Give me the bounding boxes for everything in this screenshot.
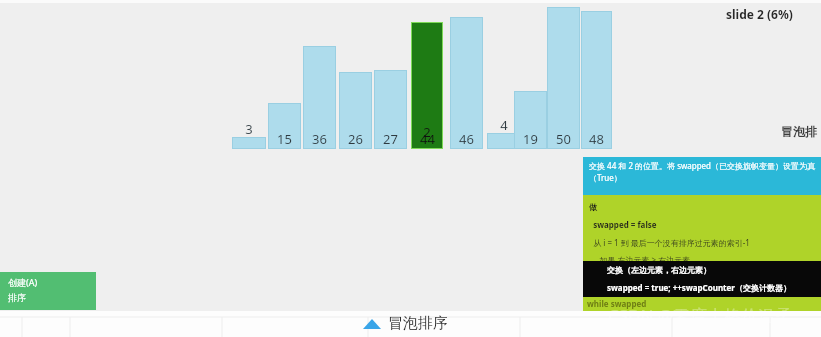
button[interactable]: slide 2 (6%): [722, 4, 797, 24]
button[interactable]: [304, 47, 335, 148]
button[interactable]: [340, 73, 371, 148]
staticText: 48: [589, 130, 604, 148]
button[interactable]: [451, 18, 482, 148]
staticText: 26: [348, 130, 363, 148]
staticText: swapped = false: [589, 219, 657, 230]
staticText: 从 i = 1 到 最后一个没有排序过元素的索引-1: [589, 237, 750, 248]
button[interactable]: [412, 23, 442, 148]
staticText: 冒泡排: [781, 124, 817, 139]
button[interactable]: [582, 12, 611, 148]
staticText: 50: [556, 130, 571, 148]
button[interactable]: 交换 44 和 2 的位置。将 swapped（已交换旗帜变量）设置为真 （Tr…: [583, 157, 821, 195]
staticText: 3: [245, 120, 253, 138]
button[interactable]: 交换（左边元素，右边元素）: [583, 261, 821, 297]
staticText: 4: [500, 116, 508, 134]
staticText: 做: [589, 202, 597, 212]
staticText: 交换（左边元素，右边元素）: [607, 265, 711, 275]
staticText: 冒泡排序: [388, 314, 448, 333]
staticText: 交换 44 和 2 的位置。将 swapped（已交换旗帜变量）设置为真 （Tr…: [589, 160, 816, 184]
button[interactable]: [269, 104, 300, 148]
staticText: while swapped: [587, 298, 647, 309]
staticText: CSDN @零度丰格价温柔: [608, 304, 793, 327]
staticText: 创建(A): [8, 276, 38, 288]
button[interactable]: Play bubble sort: [358, 312, 452, 335]
staticText: 排序: [8, 292, 26, 303]
staticText: 46: [459, 130, 474, 148]
button[interactable]: [515, 92, 546, 148]
button[interactable]: 做: [583, 199, 821, 261]
staticText: 36: [312, 130, 327, 148]
staticText: 44: [420, 130, 435, 148]
staticText: 如果 左边元素 > 右边元素: [589, 254, 691, 261]
staticText: swapped = true; ++swapCounter（交换计数器）: [607, 282, 791, 293]
staticText: 27: [383, 130, 398, 148]
button[interactable]: [375, 71, 406, 148]
staticText: 15: [277, 130, 292, 148]
button[interactable]: [488, 134, 519, 148]
other: Play bubble sort: [362, 318, 382, 330]
staticText: 19: [523, 130, 538, 148]
staticText: slide 2 (6%): [726, 6, 793, 22]
staticText: 2: [423, 123, 431, 141]
button[interactable]: 创建(A): [0, 272, 96, 310]
button[interactable]: [548, 8, 579, 148]
